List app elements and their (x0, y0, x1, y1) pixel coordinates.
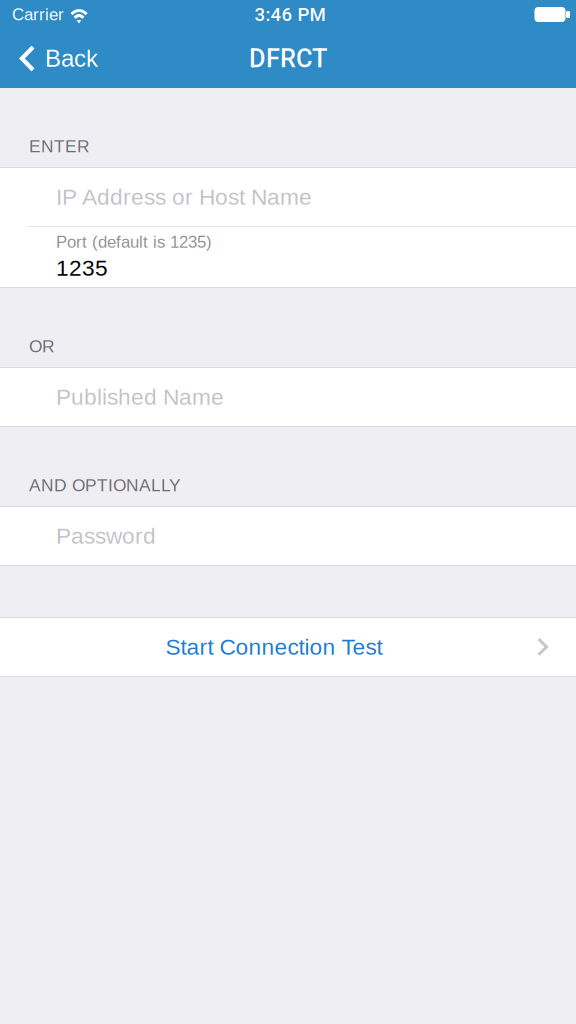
staticText: 3:46 PM (254, 4, 325, 25)
staticText: DFRCT (249, 44, 327, 73)
staticText: Carrier (12, 5, 64, 24)
button[interactable]: Start Connection Test (0, 617, 576, 677)
staticText: ENTER (29, 137, 90, 156)
staticText: Start Connection Test (165, 634, 382, 660)
staticText: AND OPTIONALLY (29, 476, 181, 495)
button[interactable]: Back (0, 29, 110, 88)
staticText: OR (29, 337, 55, 356)
staticText: IP Address or Host Name (56, 184, 312, 210)
staticText: Published Name (56, 384, 224, 410)
staticText: Port (default is 1235) (56, 232, 212, 251)
staticText: Back (45, 45, 98, 72)
staticText: Password (56, 523, 156, 549)
staticText: 1235 (56, 255, 108, 280)
